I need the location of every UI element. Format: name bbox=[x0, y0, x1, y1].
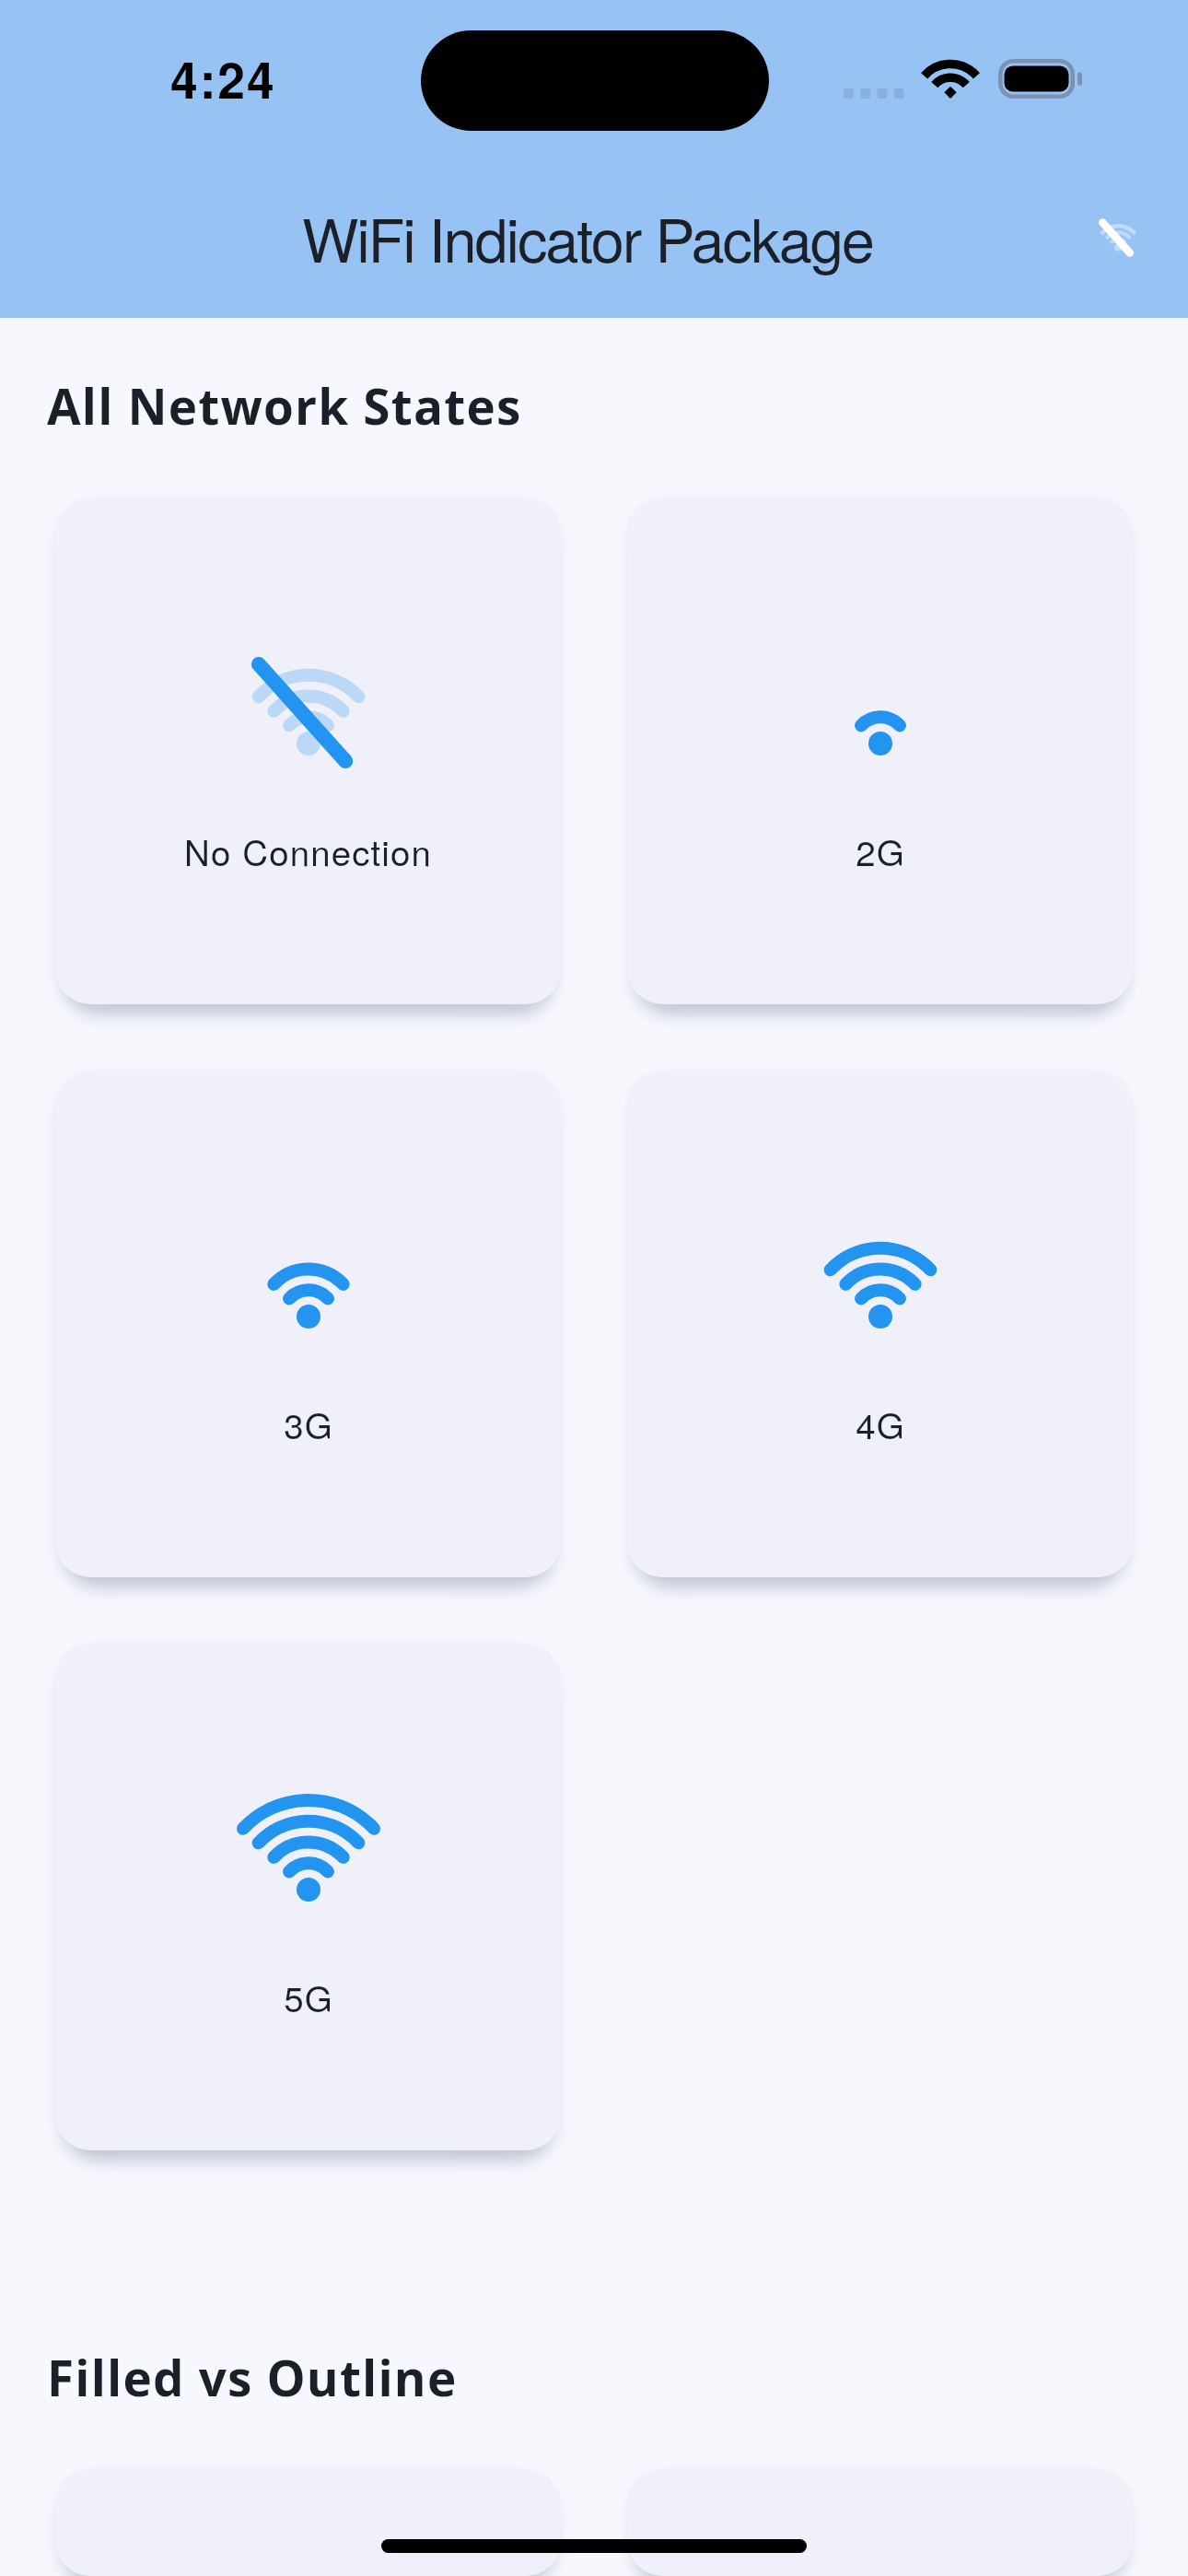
button[interactable]: 4G bbox=[627, 1071, 1133, 1577]
staticText: 3G bbox=[284, 1399, 333, 1449]
button[interactable]: 4G bbox=[55, 2469, 561, 2576]
button[interactable]: WiFi off bbox=[1068, 184, 1170, 276]
staticText: 4G bbox=[856, 1399, 905, 1449]
staticText: 4:24 bbox=[170, 43, 276, 114]
staticText: 2G bbox=[856, 825, 905, 876]
staticText: All Network States bbox=[47, 372, 522, 439]
staticText: No Connection bbox=[184, 825, 432, 876]
button[interactable]: 2G bbox=[627, 498, 1133, 1004]
button[interactable]: 5G bbox=[55, 1644, 561, 2150]
staticText: WiFi Indicator Package bbox=[302, 193, 873, 279]
staticText: 5G bbox=[284, 1972, 333, 2022]
staticText: Filled vs Outline bbox=[47, 2344, 458, 2410]
button[interactable]: No Connection bbox=[55, 498, 561, 1004]
button[interactable]: 4G bbox=[627, 2469, 1133, 2576]
button[interactable]: 3G bbox=[55, 1071, 561, 1577]
